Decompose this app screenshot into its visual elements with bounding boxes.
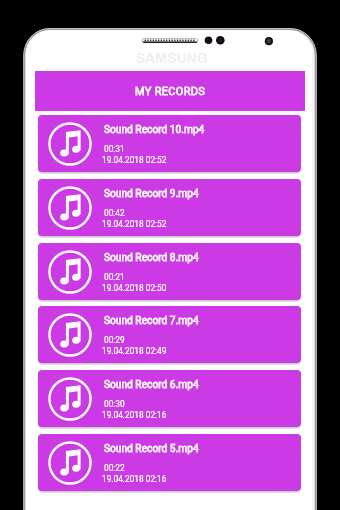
staticText: 00:22 <box>104 463 125 473</box>
staticText: Sound Record 8.mp4 <box>104 252 199 264</box>
button[interactable]: MY RECORDS <box>35 71 305 111</box>
staticText: Sound Record 6.mp4 <box>104 379 199 391</box>
staticText: 19.04.2018 02:52 <box>102 219 167 229</box>
staticText: 19.04.2018 02:16 <box>102 474 167 484</box>
staticText: 19.04.2018 02:52 <box>102 155 167 165</box>
other: Play recording <box>47 185 93 231</box>
staticText: MY RECORDS <box>135 85 206 98</box>
staticText: Sound Record 7.mp4 <box>104 315 199 327</box>
other: Play recording <box>47 312 93 358</box>
button[interactable]: Play recording <box>38 243 301 300</box>
staticText: Sound Record 5.mp4 <box>104 443 199 455</box>
staticText: SAMSUNG <box>136 51 208 66</box>
staticText: Sound Record 9.mp4 <box>104 188 199 200</box>
button[interactable]: Play recording <box>38 434 301 491</box>
staticText: 19.04.2018 02:50 <box>102 283 167 293</box>
other: Play recording <box>47 376 93 422</box>
staticText: 00:42 <box>104 208 125 218</box>
button[interactable]: Play recording <box>38 306 301 363</box>
other: Play recording <box>47 121 93 167</box>
staticText: 00:30 <box>104 399 125 409</box>
button[interactable]: Play recording <box>38 370 301 427</box>
other: Play recording <box>47 249 93 295</box>
staticText: 19.04.2018 02:16 <box>102 410 167 420</box>
other: Play recording <box>47 440 93 486</box>
button[interactable]: Play recording <box>38 179 301 236</box>
staticText: 00:21 <box>104 272 125 282</box>
staticText: 00:29 <box>104 335 125 345</box>
staticText: 00:31 <box>104 144 125 154</box>
staticText: Sound Record 10.mp4 <box>104 124 205 136</box>
staticText: 19.04.2018 02:49 <box>102 346 167 356</box>
button[interactable]: Play recording <box>38 115 301 172</box>
